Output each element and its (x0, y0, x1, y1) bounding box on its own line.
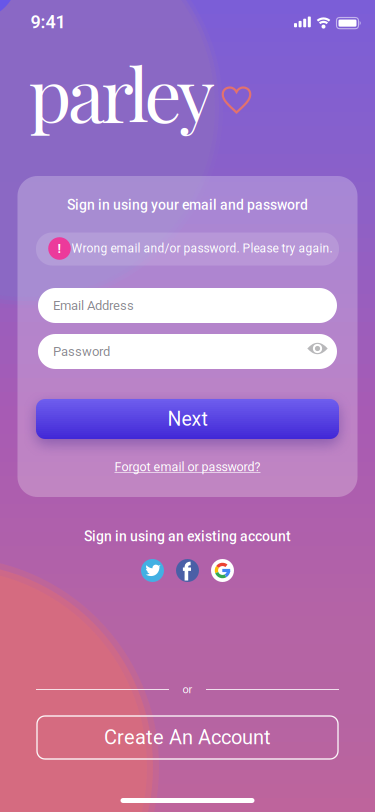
button[interactable]: Sign in with Twitter (141, 559, 164, 582)
button[interactable]: Email Address (38, 288, 337, 323)
staticText: parley (28, 43, 214, 141)
staticText: Wrong email and/or password. Please try … (71, 241, 332, 256)
button[interactable]: Forgot email or password? (114, 460, 260, 474)
button[interactable]: Sign in with Google (211, 559, 234, 582)
staticText: Create An Account (104, 726, 271, 749)
button[interactable]: Next (36, 399, 339, 439)
button[interactable]: Show password (305, 337, 329, 361)
staticText: Next (167, 408, 207, 430)
staticText: Forgot email or password? (114, 460, 260, 474)
button[interactable]: Create An Account (37, 716, 338, 759)
staticText: 9:41 (30, 11, 65, 33)
button[interactable]: Sign in with Facebook (176, 559, 199, 582)
staticText: or (182, 683, 192, 696)
staticText: Sign in using an existing account (84, 528, 291, 545)
staticText: Password (53, 344, 110, 359)
button[interactable]: Password (38, 334, 337, 369)
staticText: Sign in using your email and password (67, 197, 308, 213)
staticText: ! (57, 241, 61, 256)
staticText: Email Address (53, 298, 134, 313)
